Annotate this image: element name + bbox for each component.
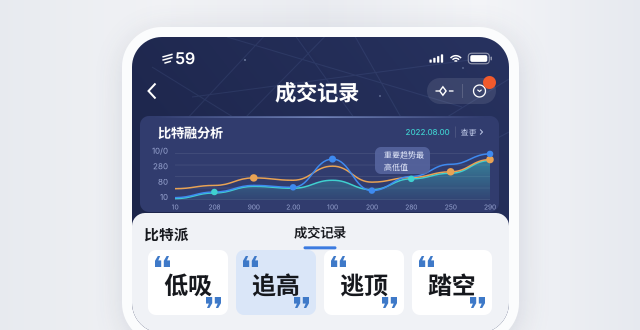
staticText: 10 bbox=[171, 203, 178, 211]
staticText: 成交记录 bbox=[275, 76, 359, 106]
staticText: 10 bbox=[160, 192, 168, 202]
button[interactable]: 逃顶 bbox=[324, 250, 404, 315]
button[interactable]: 踏空 bbox=[412, 250, 492, 315]
staticText: 250 bbox=[445, 203, 457, 211]
button[interactable]: 成交记录 bbox=[291, 222, 349, 249]
staticText: 280 bbox=[153, 161, 168, 171]
staticText: 900 bbox=[248, 203, 260, 211]
button[interactable]: Back bbox=[137, 78, 167, 104]
staticText: 低吸 bbox=[164, 266, 212, 301]
staticText: 100 bbox=[327, 203, 338, 211]
staticText: | bbox=[454, 126, 457, 138]
staticText: 208 bbox=[208, 203, 220, 211]
staticText: 290 bbox=[484, 203, 496, 211]
staticText: 重要趋势最 bbox=[384, 148, 424, 160]
button[interactable]: Account bbox=[463, 78, 496, 104]
staticText: 80 bbox=[158, 177, 168, 187]
staticText: 追高 bbox=[252, 266, 300, 301]
button[interactable]: Swap bbox=[427, 78, 462, 104]
staticText: 10/0 bbox=[152, 146, 168, 156]
staticText: 2022.08.00 bbox=[406, 127, 450, 137]
staticText: 比特融分析 bbox=[158, 122, 223, 142]
staticText: 200 bbox=[366, 203, 378, 211]
staticText: 280 bbox=[405, 203, 417, 211]
staticText: 查更 bbox=[461, 126, 477, 138]
staticText: 59 bbox=[175, 49, 195, 68]
button[interactable]: 追高 bbox=[236, 250, 316, 315]
button[interactable]: 低吸 bbox=[148, 250, 228, 315]
staticText: 逃顶 bbox=[340, 266, 388, 301]
staticText: 比特派 bbox=[144, 223, 189, 244]
staticText: 踏空 bbox=[428, 266, 476, 301]
staticText: 2.00 bbox=[286, 203, 300, 211]
staticText: 高低值 bbox=[384, 161, 408, 173]
staticText: 成交记录 bbox=[294, 222, 346, 241]
button[interactable]: 查更 bbox=[461, 126, 483, 138]
